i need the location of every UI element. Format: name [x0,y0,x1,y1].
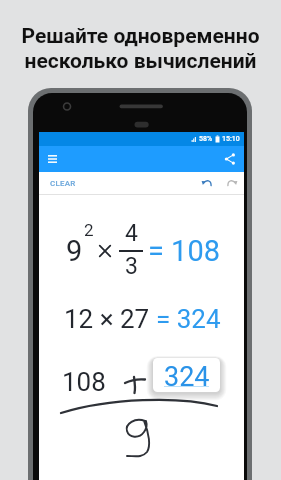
staticText: = 108 [148,234,221,268]
button[interactable]: Redo [221,172,243,194]
staticText: 12 × 27 [64,304,156,334]
staticText: 4 [125,220,138,247]
staticText: несколько вычислений [24,49,257,74]
button[interactable]: Undo [196,172,218,194]
staticText: 2 [84,220,94,240]
staticText: 58% [199,135,213,143]
staticText: 3 [125,253,138,280]
staticText: = 324 [156,304,221,334]
button[interactable]: Share [218,147,242,171]
staticText: 9 [66,234,83,268]
staticText: Решайте одновременно [21,24,260,49]
button[interactable]: CLEAR [39,172,84,194]
staticText: 324 [164,361,210,393]
staticText: CLEAR [50,179,76,188]
button[interactable]: Open navigation menu [40,147,64,171]
staticText: 108 [62,367,106,397]
staticText: 15:10 [222,135,240,143]
